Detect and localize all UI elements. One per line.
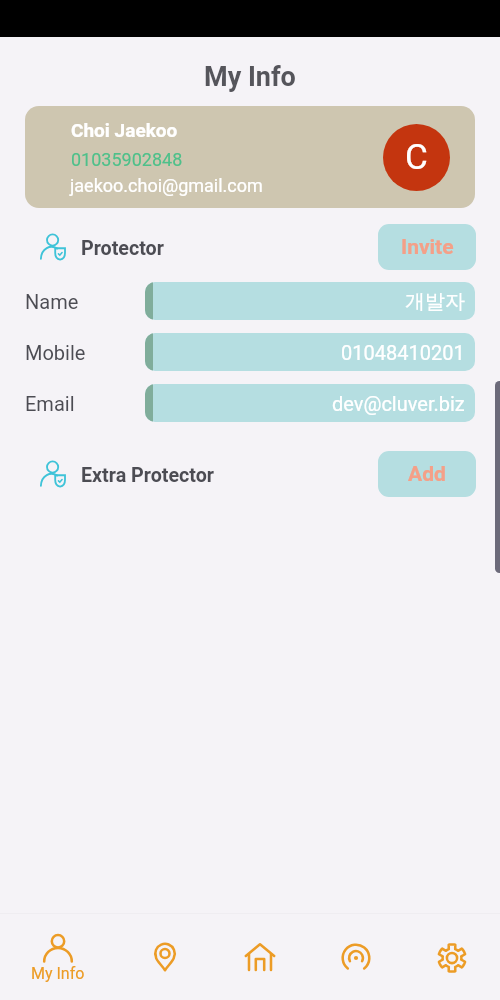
staticText: Choi Jaekoo	[71, 119, 178, 141]
staticText: Invite	[401, 235, 454, 260]
button[interactable]: Home	[212, 912, 304, 1000]
button[interactable]: Add	[378, 451, 476, 497]
staticText: dev@cluver.biz	[332, 392, 465, 415]
staticText: Protector	[81, 237, 164, 260]
staticText: 개발자	[405, 289, 465, 314]
staticText: C	[405, 137, 428, 178]
button[interactable]: dev@cluver.biz	[145, 384, 475, 422]
staticText: Extra Protector	[81, 464, 215, 487]
staticText: My Info	[31, 964, 85, 983]
staticText: Email	[25, 392, 75, 415]
button[interactable]: Settings	[404, 912, 496, 1000]
staticText: 01048410201	[341, 341, 465, 364]
button[interactable]: Choi Jaekoo	[25, 106, 475, 208]
button[interactable]: Location	[116, 912, 208, 1000]
staticText: jaekoo.choi@gmail.com	[70, 175, 263, 196]
button[interactable]: Tracking	[308, 912, 400, 1000]
staticText: Add	[408, 462, 446, 487]
staticText: Mobile	[25, 341, 86, 364]
button[interactable]: 01048410201	[145, 333, 475, 371]
button[interactable]: My Info	[12, 912, 104, 1000]
staticText: 01035902848	[71, 149, 183, 170]
staticText: My Info	[204, 61, 296, 93]
button[interactable]: Invite	[378, 224, 476, 270]
button[interactable]: 개발자	[145, 282, 475, 320]
staticText: Name	[25, 290, 79, 313]
